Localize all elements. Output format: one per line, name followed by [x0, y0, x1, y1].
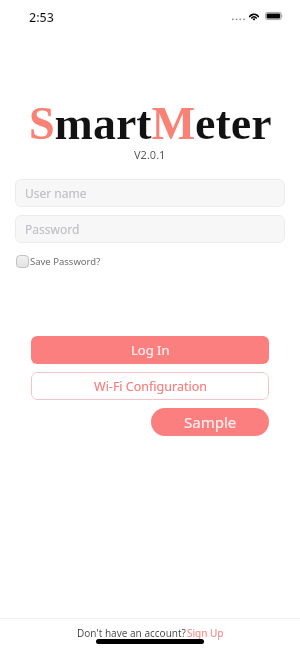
button[interactable]: Log In [31, 336, 269, 364]
staticText: Sign Up [187, 626, 224, 640]
button[interactable]: Don't have an account? [77, 626, 224, 640]
button[interactable]: Sample [151, 408, 269, 436]
staticText: Log In [131, 341, 170, 359]
staticText: Password [25, 221, 80, 237]
staticText: Sample [184, 412, 237, 432]
button[interactable]: Password [15, 215, 285, 243]
staticText: Wi-Fi Configuration [94, 378, 207, 395]
staticText: V2.0.1 [134, 147, 166, 161]
button[interactable]: User name [15, 179, 285, 207]
staticText: 2:53 [29, 9, 54, 26]
staticText: Don't have an account? [77, 626, 186, 640]
staticText: User name [25, 185, 87, 201]
button[interactable]: Save Password? [16, 255, 101, 268]
staticText: SmartMeter [29, 98, 272, 142]
button[interactable]: Wi-Fi Configuration [31, 372, 269, 400]
staticText: Save Password? [30, 255, 101, 268]
